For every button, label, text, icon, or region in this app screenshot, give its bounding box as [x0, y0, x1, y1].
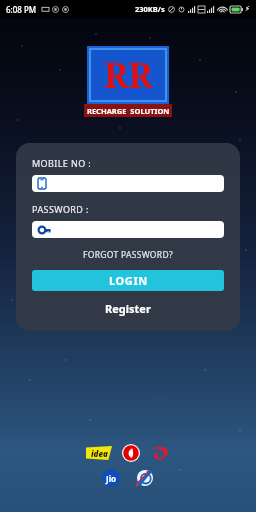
other: Mobile number [38, 178, 46, 189]
button[interactable]: LOGIN [32, 270, 224, 291]
staticText: RR [104, 52, 153, 98]
button[interactable]: Jio [102, 469, 120, 487]
button[interactable]: FORGOT PASSWORD? [32, 247, 224, 263]
button[interactable]: Vodafone [122, 444, 140, 462]
staticText: ⚡ [245, 5, 250, 13]
staticText: 6:08 PM [6, 4, 37, 15]
staticText: Register [105, 301, 151, 316]
staticText: 230KB/s [135, 4, 165, 14]
staticText: FORGOT PASSWORD? [83, 249, 173, 261]
button[interactable]: Airtel [150, 446, 170, 461]
staticText: LOGIN [109, 273, 148, 288]
button[interactable]: Password [32, 221, 224, 238]
staticText: MOBILE NO : [32, 157, 92, 169]
button[interactable]: Register [32, 300, 224, 317]
button[interactable]: BSNL [134, 468, 154, 488]
staticText: PASSWORD : [32, 203, 89, 215]
staticText: idea [91, 448, 108, 459]
button[interactable]: Mobile number [32, 175, 224, 192]
staticText: Jio [106, 473, 117, 484]
other: Password [38, 226, 51, 234]
staticText: RECHARGE SOLUTION [87, 106, 170, 116]
button[interactable]: Idea [86, 446, 112, 460]
